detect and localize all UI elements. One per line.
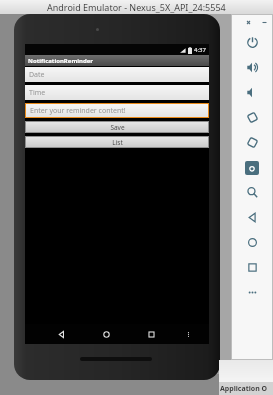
button[interactable]: Rotate right bbox=[231, 130, 273, 155]
button[interactable]: Back bbox=[231, 205, 273, 230]
staticText: Enter your reminder content! bbox=[30, 106, 126, 116]
button[interactable]: Home bbox=[231, 230, 273, 255]
staticText: Date bbox=[29, 70, 45, 80]
button[interactable]: Enter your reminder content! bbox=[26, 104, 208, 117]
button[interactable]: Back bbox=[53, 326, 69, 342]
staticText: NotificationReminder bbox=[28, 57, 93, 65]
button[interactable]: More bbox=[231, 280, 273, 305]
button[interactable]: List bbox=[25, 136, 209, 148]
button[interactable]: Power bbox=[231, 30, 273, 55]
button[interactable]: Home bbox=[98, 326, 114, 342]
staticText: List bbox=[112, 138, 123, 147]
button[interactable]: Take screenshot bbox=[231, 155, 273, 180]
button[interactable]: Recents bbox=[231, 255, 273, 280]
button[interactable]: Volume down bbox=[231, 80, 273, 105]
button[interactable]: Zoom bbox=[231, 180, 273, 205]
staticText: Android Emulator - Nexus_5X_API_24:5554 bbox=[47, 1, 226, 13]
button[interactable]: Close bbox=[244, 18, 253, 27]
button[interactable]: Rotate left bbox=[231, 105, 273, 130]
button[interactable]: Save bbox=[25, 121, 209, 133]
button[interactable]: More options bbox=[180, 326, 196, 342]
staticText: Save bbox=[110, 123, 125, 132]
staticText: Application O bbox=[220, 384, 268, 394]
button[interactable]: Time bbox=[25, 85, 209, 100]
staticText: 4:37 bbox=[194, 46, 206, 54]
button[interactable]: Volume up bbox=[231, 55, 273, 80]
button[interactable]: Minimize bbox=[260, 18, 269, 27]
button[interactable]: Date bbox=[25, 67, 209, 82]
staticText: Time bbox=[29, 88, 46, 98]
button[interactable]: Recents bbox=[143, 326, 159, 342]
